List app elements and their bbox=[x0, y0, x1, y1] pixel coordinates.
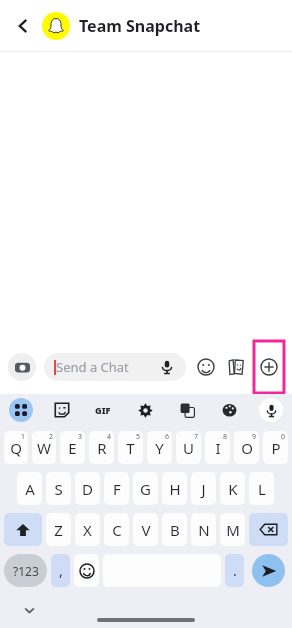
button[interactable]: Send a Chat bbox=[54, 353, 176, 381]
button[interactable]: P bbox=[263, 431, 288, 464]
button[interactable]: L bbox=[249, 472, 274, 505]
button[interactable]: D bbox=[75, 472, 100, 505]
button[interactable]: R bbox=[89, 431, 114, 464]
staticText: U bbox=[183, 438, 194, 458]
button[interactable]: Apps bbox=[0, 394, 41, 426]
button[interactable]: Theme bbox=[208, 394, 250, 426]
button[interactable]: GIF bbox=[82, 394, 124, 426]
button[interactable]: N bbox=[191, 513, 216, 546]
staticText: X bbox=[83, 520, 92, 540]
button[interactable]: B bbox=[162, 513, 187, 546]
button[interactable]: Back bbox=[10, 13, 36, 39]
staticText: 6 bbox=[165, 432, 170, 442]
button[interactable]: V bbox=[133, 513, 158, 546]
button[interactable]: Voice input bbox=[158, 358, 176, 376]
staticText: I bbox=[215, 438, 221, 458]
button[interactable]: Backspace bbox=[249, 513, 288, 546]
staticText: Z bbox=[54, 520, 63, 540]
button[interactable]: U bbox=[176, 431, 201, 464]
staticText: O bbox=[241, 438, 253, 458]
button[interactable]: . bbox=[225, 554, 244, 587]
button[interactable]: A bbox=[17, 472, 42, 505]
button[interactable]: Add bbox=[254, 341, 284, 393]
staticText: Team Snapchat bbox=[79, 15, 201, 37]
button[interactable]: Sticker bbox=[41, 394, 82, 426]
staticText: . bbox=[233, 561, 237, 580]
staticText: 1 bbox=[21, 432, 26, 442]
button[interactable]: Settings bbox=[124, 394, 166, 426]
button[interactable]: C bbox=[104, 513, 129, 546]
button[interactable]: X bbox=[75, 513, 100, 546]
staticText: A bbox=[25, 479, 35, 499]
button[interactable]: Send bbox=[252, 554, 285, 587]
staticText: K bbox=[228, 479, 238, 499]
staticText: 3 bbox=[78, 432, 83, 442]
staticText: Q bbox=[10, 438, 22, 458]
button[interactable]: Emoji bbox=[74, 554, 99, 587]
button[interactable]: G bbox=[133, 472, 158, 505]
staticText: F bbox=[113, 479, 121, 499]
button[interactable]: H bbox=[162, 472, 187, 505]
button[interactable]: W bbox=[32, 431, 56, 464]
staticText: T bbox=[126, 438, 135, 458]
staticText: Y bbox=[155, 438, 164, 458]
button[interactable]: Translate bbox=[166, 394, 208, 426]
staticText: ?123 bbox=[13, 563, 39, 579]
button[interactable]: J bbox=[191, 472, 216, 505]
staticText: , bbox=[59, 561, 63, 580]
staticText: B bbox=[170, 520, 180, 540]
staticText: 4 bbox=[107, 432, 112, 442]
button[interactable]: F bbox=[104, 472, 129, 505]
button[interactable]: Z bbox=[46, 513, 71, 546]
button[interactable]: Camera bbox=[8, 353, 36, 381]
staticText: 5 bbox=[136, 432, 141, 442]
button[interactable]: Voice bbox=[250, 394, 292, 426]
staticText: V bbox=[141, 520, 151, 540]
staticText: E bbox=[68, 438, 77, 458]
button[interactable]: ?123 bbox=[4, 554, 47, 587]
button[interactable]: E bbox=[60, 431, 85, 464]
button[interactable]: Hide keyboard bbox=[18, 599, 40, 621]
button[interactable]: I bbox=[205, 431, 230, 464]
button[interactable]: O bbox=[234, 431, 259, 464]
staticText: L bbox=[258, 479, 266, 499]
staticText: J bbox=[201, 479, 206, 499]
staticText: P bbox=[271, 438, 281, 458]
staticText: 0 bbox=[281, 432, 286, 442]
staticText: 8 bbox=[223, 432, 228, 442]
staticText: 7 bbox=[194, 432, 199, 442]
staticText: N bbox=[198, 520, 210, 540]
staticText: G bbox=[140, 479, 151, 499]
staticText: Send a Chat bbox=[56, 358, 129, 376]
staticText: W bbox=[37, 438, 51, 458]
staticText: R bbox=[97, 438, 107, 458]
button[interactable]: M bbox=[220, 513, 245, 546]
button[interactable]: Emoji bbox=[194, 355, 218, 379]
button[interactable]: T bbox=[118, 431, 143, 464]
staticText: 9 bbox=[252, 432, 257, 442]
staticText: GIF bbox=[95, 404, 111, 416]
button[interactable]: Stickers bbox=[224, 355, 248, 379]
staticText: H bbox=[169, 479, 181, 499]
button[interactable]: K bbox=[220, 472, 245, 505]
staticText: S bbox=[54, 479, 63, 499]
staticText: 2 bbox=[49, 432, 54, 442]
button[interactable]: , bbox=[51, 554, 70, 587]
button[interactable]: S bbox=[46, 472, 71, 505]
button[interactable]: Q bbox=[4, 431, 28, 464]
button[interactable]: Shift bbox=[4, 513, 42, 546]
staticText: C bbox=[112, 520, 122, 540]
staticText: D bbox=[82, 479, 93, 499]
staticText: M bbox=[226, 520, 240, 540]
button[interactable]: Y bbox=[147, 431, 172, 464]
